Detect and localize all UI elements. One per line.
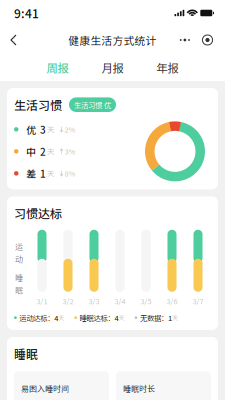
staticText: 优 [26, 122, 36, 137]
staticText: 中 [26, 144, 36, 159]
button[interactable]: 月报 [85, 54, 140, 81]
staticText: 3/6 [166, 296, 177, 306]
staticText: 习惯达标 [14, 204, 62, 222]
staticText: 动 [15, 253, 23, 265]
staticText: 睡眠达标： [80, 312, 115, 323]
button[interactable]: 返回 [0, 28, 25, 52]
staticText: 眠 [15, 284, 23, 296]
staticText: 3/5 [140, 296, 151, 306]
staticText: 4 [115, 312, 119, 323]
staticText: 3/7 [192, 296, 203, 306]
staticText: 4 [54, 312, 58, 323]
staticText: 3/4 [114, 296, 125, 306]
staticText: 无数据： [140, 312, 168, 323]
staticText: 3/3 [88, 296, 99, 306]
staticText: 睡 [15, 271, 23, 283]
staticText: 天 [172, 313, 178, 322]
staticText: 2 [40, 144, 46, 159]
staticText: 天 [47, 146, 54, 157]
staticText: 差 [26, 166, 36, 181]
staticText: 3% [64, 146, 75, 157]
staticText: 运 [15, 240, 23, 252]
button[interactable]: 周报 [30, 54, 85, 81]
staticText: 2% [64, 124, 75, 135]
button[interactable]: 更多 [178, 34, 192, 46]
staticText: 天 [58, 313, 64, 322]
staticText: 易困入睡时间 [21, 383, 69, 394]
staticText: 3 [40, 122, 46, 137]
staticText: 睡眠时长 [123, 383, 155, 394]
staticText: 1 [168, 312, 172, 323]
staticText: 1 [40, 166, 46, 181]
staticText: 睡眠 [14, 345, 38, 362]
button[interactable]: 关闭 [201, 33, 214, 46]
staticText: 生活习惯 优 [74, 99, 111, 110]
staticText: 9:41 [14, 4, 39, 22]
staticText: 天 [47, 168, 54, 179]
staticText: 月报 [101, 59, 123, 76]
staticText: 运动达标： [19, 312, 54, 323]
staticText: 3/1 [36, 296, 47, 306]
staticText: 健康生活方式统计 [68, 32, 156, 48]
staticText: 生活习惯 [14, 96, 62, 113]
staticText: 周报 [46, 59, 68, 76]
button[interactable]: 年报 [140, 54, 195, 81]
staticText: 天 [119, 313, 125, 322]
staticText: 天 [47, 124, 54, 135]
staticText: 年报 [156, 59, 178, 76]
staticText: 3/2 [62, 296, 73, 306]
staticText: 8% [64, 168, 75, 179]
